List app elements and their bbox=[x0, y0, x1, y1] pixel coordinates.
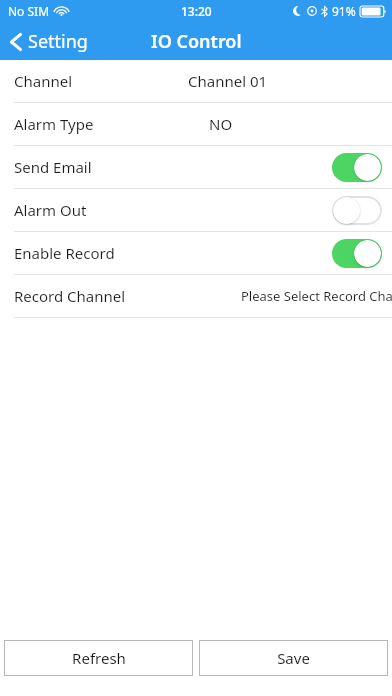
staticText: 13:20 bbox=[181, 3, 212, 19]
staticText: NO bbox=[209, 114, 233, 134]
staticText: 91% bbox=[332, 3, 356, 19]
button[interactable]: Toggle on bbox=[332, 239, 382, 268]
button[interactable]: Save bbox=[199, 640, 388, 676]
staticText: Send Email bbox=[14, 157, 92, 177]
staticText: Refresh bbox=[72, 648, 126, 668]
staticText: Alarm Out bbox=[14, 200, 87, 220]
button[interactable]: Alarm Out bbox=[0, 189, 392, 231]
staticText: No SIM bbox=[8, 3, 50, 19]
button[interactable]: Toggle on bbox=[332, 153, 382, 182]
staticText: Please Select Record Channel bbox=[241, 287, 392, 305]
staticText: Enable Record bbox=[14, 243, 115, 263]
button[interactable]: Setting bbox=[0, 25, 98, 58]
staticText: Alarm Type bbox=[14, 114, 94, 134]
staticText: Save bbox=[277, 648, 310, 668]
staticText: Record Channel bbox=[14, 286, 126, 306]
staticText: IO Control bbox=[151, 29, 242, 54]
button[interactable]: Refresh bbox=[4, 640, 193, 676]
button[interactable]: Toggle off bbox=[332, 196, 382, 225]
button[interactable]: Enable Record bbox=[0, 232, 392, 274]
button[interactable]: Send Email bbox=[0, 146, 392, 188]
staticText: Setting bbox=[28, 29, 88, 54]
button[interactable]: Record Channel bbox=[0, 275, 392, 317]
staticText: Channel bbox=[14, 71, 73, 91]
button[interactable]: Alarm Type bbox=[0, 103, 392, 145]
button[interactable]: Channel bbox=[0, 60, 392, 102]
staticText: Channel 01 bbox=[188, 71, 268, 91]
